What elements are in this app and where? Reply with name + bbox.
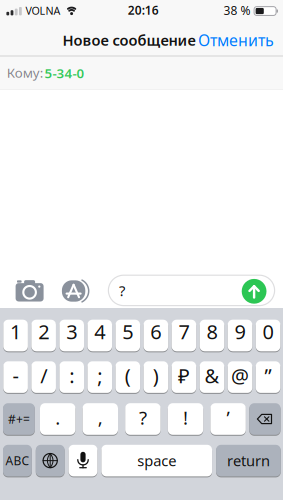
button[interactable]: ’ [210, 403, 246, 436]
button[interactable]: 7 [172, 320, 196, 352]
staticText: ’ [227, 405, 230, 430]
button[interactable]: 3 [59, 320, 84, 352]
button[interactable]: @ [228, 361, 252, 394]
button[interactable]: 9 [228, 320, 252, 352]
button[interactable]: space [101, 445, 212, 477]
button[interactable]: / [31, 361, 56, 394]
button[interactable]: , [83, 403, 118, 436]
button[interactable]: 0 [256, 320, 280, 352]
staticText: 9 [234, 318, 245, 345]
staticText: ₽ [178, 362, 190, 389]
button[interactable]: 1 [3, 320, 28, 352]
button[interactable]: ) [144, 361, 168, 394]
staticText: @ [231, 362, 249, 389]
button[interactable]: - [3, 361, 28, 394]
staticText: ? [119, 281, 125, 300]
staticText: & [204, 362, 219, 389]
staticText: 38 % [223, 2, 250, 18]
staticText: 20:16 [128, 2, 159, 18]
button[interactable]: Dictate [69, 445, 97, 477]
button[interactable]: Delete [249, 403, 280, 436]
staticText: ! [183, 405, 188, 430]
staticText: 5-34-0 [44, 64, 84, 82]
staticText: return [227, 451, 270, 470]
staticText: 6 [150, 318, 161, 345]
staticText: / [40, 362, 47, 389]
button[interactable]: ! [168, 403, 203, 436]
staticText: : [69, 362, 74, 389]
button[interactable]: return [216, 445, 281, 477]
button[interactable]: Send [241, 278, 267, 304]
button[interactable]: 4 [87, 320, 112, 352]
staticText: #+= [8, 411, 30, 427]
staticText: VOLNA [25, 3, 60, 18]
button[interactable]: Camera [14, 277, 46, 302]
staticText: . [55, 405, 60, 430]
staticText: 7 [178, 318, 189, 345]
staticText: Новое сообщение [62, 30, 195, 50]
button[interactable]: ₽ [172, 361, 196, 394]
staticText: - [13, 362, 19, 389]
button[interactable]: Message [108, 275, 275, 306]
staticText: 2 [38, 318, 49, 345]
staticText: ABC [5, 453, 29, 468]
staticText: 8 [206, 318, 217, 345]
button[interactable]: 5 [115, 320, 140, 352]
staticText: ) [153, 362, 159, 389]
button[interactable]: ” [256, 361, 280, 394]
staticText: ? [139, 405, 147, 430]
button[interactable]: 5-34-0 [44, 64, 84, 82]
button[interactable]: 8 [200, 320, 224, 352]
button[interactable]: 6 [144, 320, 168, 352]
staticText: space [137, 451, 176, 470]
staticText: ( [125, 362, 131, 389]
button[interactable]: . [40, 403, 75, 436]
staticText: 0 [263, 318, 274, 345]
button[interactable]: #+= [3, 403, 35, 436]
staticText: , [98, 405, 103, 430]
button[interactable]: Отменить [198, 29, 274, 51]
button[interactable]: 2 [31, 320, 56, 352]
staticText: 5 [122, 318, 133, 345]
staticText: 3 [66, 318, 77, 345]
button[interactable]: ? [125, 403, 161, 436]
button[interactable]: ; [87, 361, 112, 394]
button[interactable]: Next keyboard [36, 445, 65, 477]
staticText: Кому: [7, 64, 44, 81]
staticText: Отменить [198, 29, 274, 51]
staticText: 1 [10, 318, 21, 345]
button[interactable]: & [200, 361, 224, 394]
button[interactable]: ( [115, 361, 140, 394]
staticText: ” [265, 362, 272, 389]
button[interactable]: : [59, 361, 84, 394]
button[interactable]: Apps [61, 279, 93, 303]
staticText: ; [97, 362, 102, 389]
staticText: 4 [94, 318, 105, 345]
button[interactable]: ABC [3, 445, 32, 477]
